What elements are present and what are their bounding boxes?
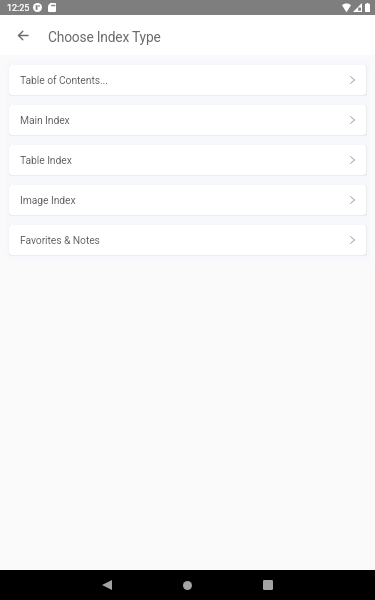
button[interactable]: Back bbox=[79, 570, 134, 600]
button[interactable]: Back bbox=[10, 23, 35, 48]
staticText: Favorites & Notes bbox=[20, 234, 100, 246]
button[interactable]: Table Index bbox=[9, 145, 366, 175]
staticText: Choose Index Type bbox=[48, 29, 161, 45]
staticText: Table of Contents... bbox=[20, 74, 108, 86]
button[interactable]: Table of Contents... bbox=[9, 65, 366, 95]
staticText: Image Index bbox=[20, 194, 76, 206]
button[interactable]: Main Index bbox=[9, 105, 366, 135]
button[interactable]: Recent apps bbox=[240, 570, 295, 600]
staticText: Main Index bbox=[20, 114, 70, 126]
button[interactable]: Image Index bbox=[9, 185, 366, 215]
button[interactable]: Favorites & Notes bbox=[9, 225, 366, 255]
button[interactable]: Home bbox=[160, 570, 215, 600]
staticText: Table Index bbox=[20, 154, 72, 166]
staticText: 12:25 bbox=[7, 3, 30, 14]
